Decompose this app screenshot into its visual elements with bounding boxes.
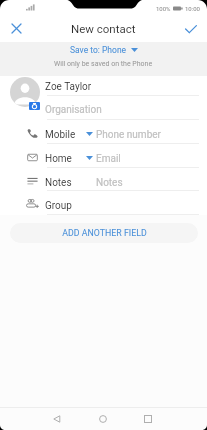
staticText: Home: [45, 153, 72, 165]
button[interactable]: Recents: [137, 408, 159, 430]
staticText: 100%: [156, 5, 171, 12]
button[interactable]: Add photo: [29, 102, 40, 110]
button[interactable]: Save: [175, 14, 207, 42]
button[interactable]: Home: [92, 408, 114, 430]
button[interactable]: Home: [0, 144, 207, 166]
staticText: Organisation: [45, 104, 102, 116]
button[interactable]: Mobile: [0, 120, 207, 142]
staticText: ADD ANOTHER FIELD: [62, 228, 147, 238]
staticText: Mobile: [45, 129, 76, 141]
staticText: Zoe Taylor: [45, 81, 92, 93]
staticText: Email: [96, 153, 121, 165]
button[interactable]: Group: [0, 191, 207, 213]
staticText: Phone number: [96, 129, 161, 141]
staticText: Save to: Phone: [70, 45, 127, 55]
staticText: Notes: [45, 177, 72, 189]
staticText: New contact: [71, 22, 136, 35]
button[interactable]: Save to: Phone: [68, 44, 140, 56]
button[interactable]: Back: [46, 408, 68, 430]
button[interactable]: Cancel: [0, 14, 32, 42]
staticText: Group: [45, 200, 72, 212]
button[interactable]: Notes: [0, 168, 207, 190]
button[interactable]: ADD ANOTHER FIELD: [10, 223, 198, 243]
staticText: Will only be saved on the Phone: [54, 60, 153, 68]
staticText: 10:00: [185, 5, 200, 12]
staticText: Notes: [96, 177, 123, 189]
